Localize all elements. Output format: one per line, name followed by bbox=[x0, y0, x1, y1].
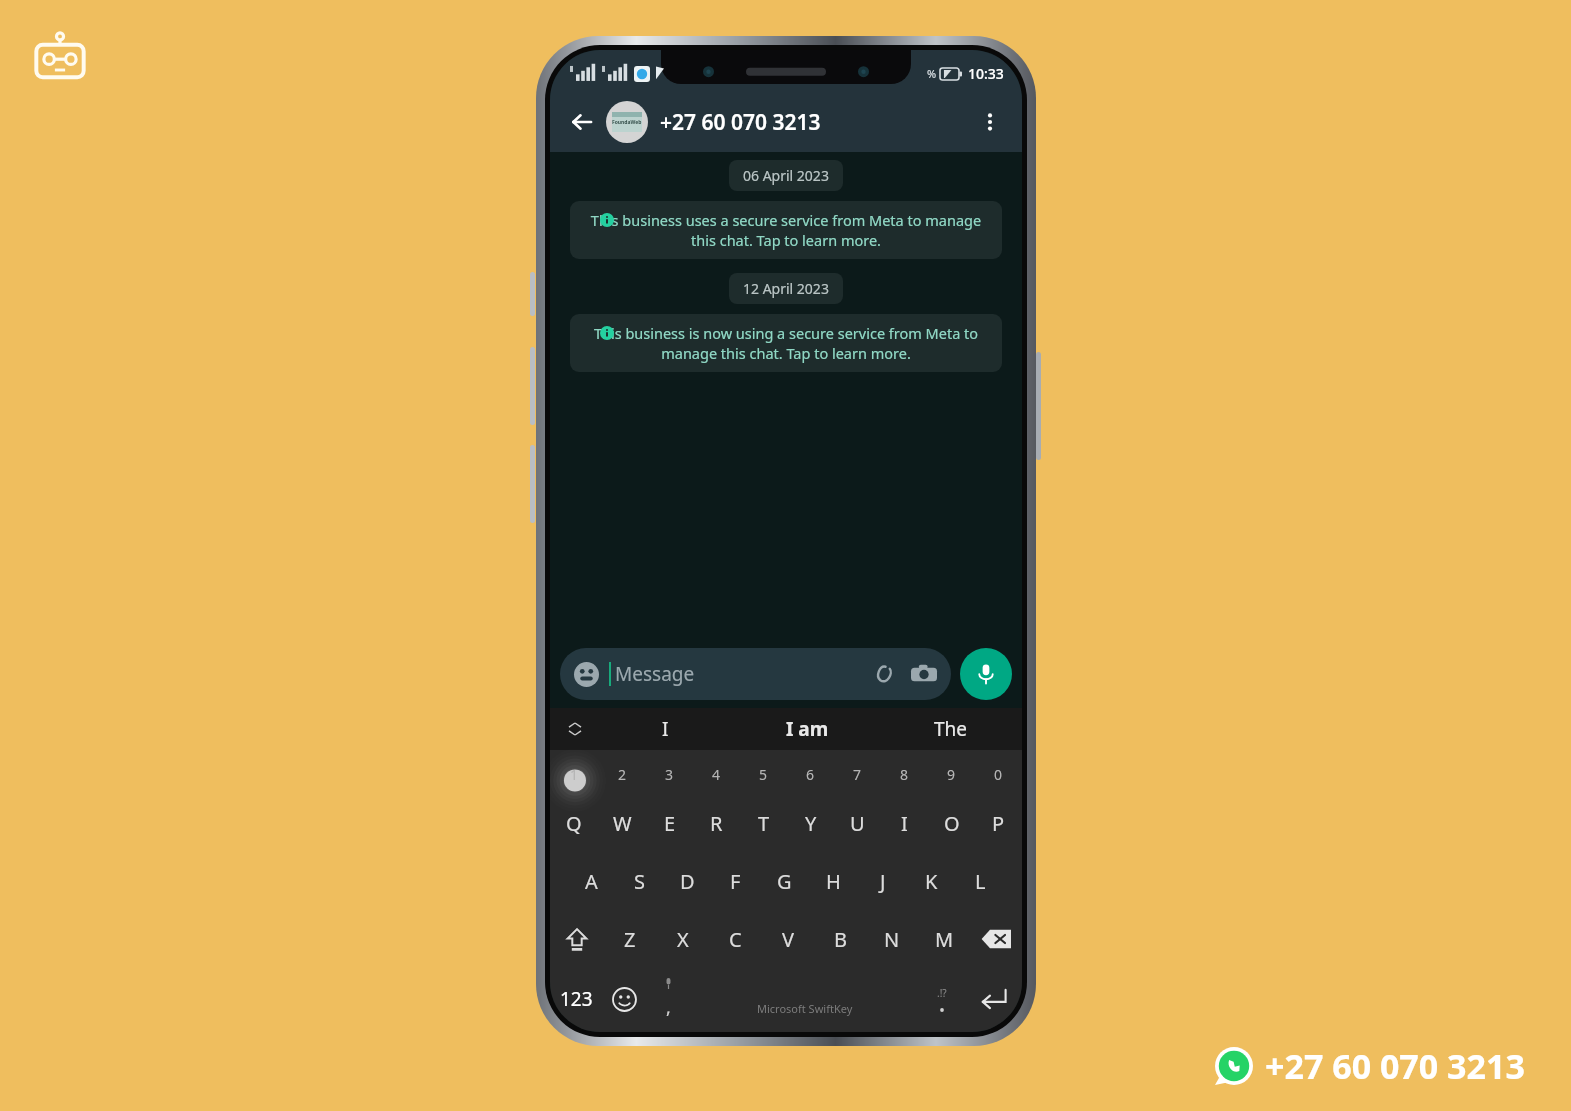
staticText: T bbox=[758, 810, 770, 837]
button[interactable]: Emoji bbox=[560, 648, 951, 700]
staticText: 123 bbox=[560, 986, 593, 1012]
staticText: S bbox=[634, 868, 645, 895]
button[interactable]: 3 bbox=[646, 754, 693, 794]
staticText: F bbox=[730, 868, 741, 895]
staticText: G bbox=[777, 868, 792, 895]
staticText: 7 bbox=[853, 765, 862, 784]
button[interactable]: B bbox=[814, 910, 866, 968]
staticText: W bbox=[613, 810, 632, 837]
staticText: , bbox=[666, 995, 671, 1020]
staticText: 10:33 bbox=[968, 64, 1004, 83]
button[interactable]: More options bbox=[970, 102, 1010, 142]
button[interactable]: M bbox=[918, 910, 970, 968]
button[interactable]: V bbox=[762, 910, 814, 968]
staticText: H bbox=[826, 868, 841, 895]
button[interactable]: X bbox=[656, 910, 709, 968]
button[interactable]: D bbox=[663, 852, 711, 910]
staticText: 8 bbox=[900, 765, 909, 784]
button[interactable]: U bbox=[834, 794, 881, 852]
staticText: This business uses a secure service from… bbox=[582, 210, 990, 250]
button[interactable]: K bbox=[907, 852, 956, 910]
button[interactable]: I am bbox=[736, 708, 879, 750]
button[interactable]: Space bbox=[690, 968, 920, 1030]
button[interactable]: 12 April 2023 bbox=[729, 273, 843, 304]
button[interactable]: , bbox=[646, 968, 690, 1030]
staticText: V bbox=[782, 926, 794, 953]
button[interactable]: Shift bbox=[550, 910, 603, 968]
button[interactable]: The bbox=[879, 708, 1022, 750]
button[interactable]: N bbox=[866, 910, 918, 968]
button[interactable]: 9 bbox=[928, 754, 975, 794]
button[interactable]: Q bbox=[550, 794, 598, 852]
button[interactable]: This business is now using a secure serv… bbox=[570, 314, 1002, 372]
staticText: 2 bbox=[618, 765, 627, 784]
button[interactable]: L bbox=[956, 852, 1005, 910]
button[interactable]: H bbox=[809, 852, 858, 910]
button[interactable]: 4 bbox=[693, 754, 740, 794]
button[interactable]: R bbox=[693, 794, 740, 852]
button[interactable]: F bbox=[711, 852, 760, 910]
button[interactable]: S bbox=[615, 852, 663, 910]
staticText: R bbox=[710, 810, 723, 837]
button[interactable]: W bbox=[598, 794, 646, 852]
button[interactable]: 0 bbox=[975, 754, 1022, 794]
button[interactable]: Y bbox=[787, 794, 834, 852]
button[interactable]: T bbox=[740, 794, 787, 852]
button[interactable]: Expand suggestions bbox=[568, 722, 582, 736]
button[interactable]: Emoji keyboard bbox=[602, 968, 646, 1030]
button[interactable]: J bbox=[858, 852, 907, 910]
staticText: I bbox=[901, 810, 908, 837]
button[interactable]: FoundaWeb bbox=[606, 101, 970, 143]
staticText: The bbox=[934, 716, 968, 742]
button[interactable]: Enter bbox=[964, 968, 1022, 1030]
staticText: FoundaWeb bbox=[612, 119, 642, 126]
staticText: 5 bbox=[759, 765, 768, 784]
staticText: Z bbox=[624, 926, 636, 953]
button[interactable]: E bbox=[646, 794, 693, 852]
button[interactable]: 7 bbox=[834, 754, 881, 794]
staticText: Y bbox=[805, 810, 817, 837]
button[interactable]: Camera bbox=[911, 661, 937, 687]
staticText: 0 bbox=[994, 765, 1003, 784]
button[interactable]: I bbox=[594, 708, 736, 750]
button[interactable]: Z bbox=[603, 910, 656, 968]
button[interactable]: This business uses a secure service from… bbox=[570, 201, 1002, 259]
button[interactable]: Backspace bbox=[970, 910, 1022, 968]
staticText: 3 bbox=[665, 765, 674, 784]
staticText: 9 bbox=[947, 765, 956, 784]
button[interactable]: A bbox=[567, 852, 615, 910]
button[interactable]: Back bbox=[562, 102, 602, 142]
staticText: 1 bbox=[570, 765, 579, 784]
staticText: U bbox=[850, 810, 865, 837]
button[interactable]: 123 bbox=[550, 968, 602, 1030]
staticText: O bbox=[944, 810, 960, 837]
button[interactable]: 06 April 2023 bbox=[729, 160, 843, 191]
button[interactable]: 6 bbox=[787, 754, 834, 794]
button[interactable]: O bbox=[928, 794, 975, 852]
button[interactable]: Attach bbox=[871, 661, 897, 687]
staticText: X bbox=[677, 926, 689, 953]
staticText: J bbox=[880, 868, 886, 895]
staticText: Message bbox=[615, 661, 871, 687]
button[interactable]: 2 bbox=[598, 754, 646, 794]
button[interactable]: C bbox=[709, 910, 762, 968]
button[interactable]: .!? bbox=[920, 968, 964, 1030]
staticText: % bbox=[927, 66, 937, 81]
staticText: I am bbox=[786, 716, 829, 742]
staticText: L bbox=[975, 868, 986, 895]
button[interactable]: I bbox=[881, 794, 928, 852]
button[interactable]: 8 bbox=[881, 754, 928, 794]
staticText: E bbox=[664, 810, 676, 837]
staticText: B bbox=[834, 926, 847, 953]
staticText: .!? bbox=[937, 986, 947, 1000]
button[interactable]: Voice message bbox=[960, 648, 1012, 700]
button[interactable]: 5 bbox=[740, 754, 787, 794]
staticText: C bbox=[729, 926, 742, 953]
button[interactable]: G bbox=[760, 852, 809, 910]
staticText: +27 60 070 3213 bbox=[1265, 1043, 1525, 1089]
button[interactable]: P bbox=[975, 794, 1022, 852]
staticText: This business is now using a secure serv… bbox=[582, 323, 990, 363]
button[interactable]: 1 bbox=[550, 754, 598, 794]
staticText: Microsoft SwiftKey bbox=[757, 1001, 853, 1016]
staticText: 12 April 2023 bbox=[743, 279, 829, 298]
